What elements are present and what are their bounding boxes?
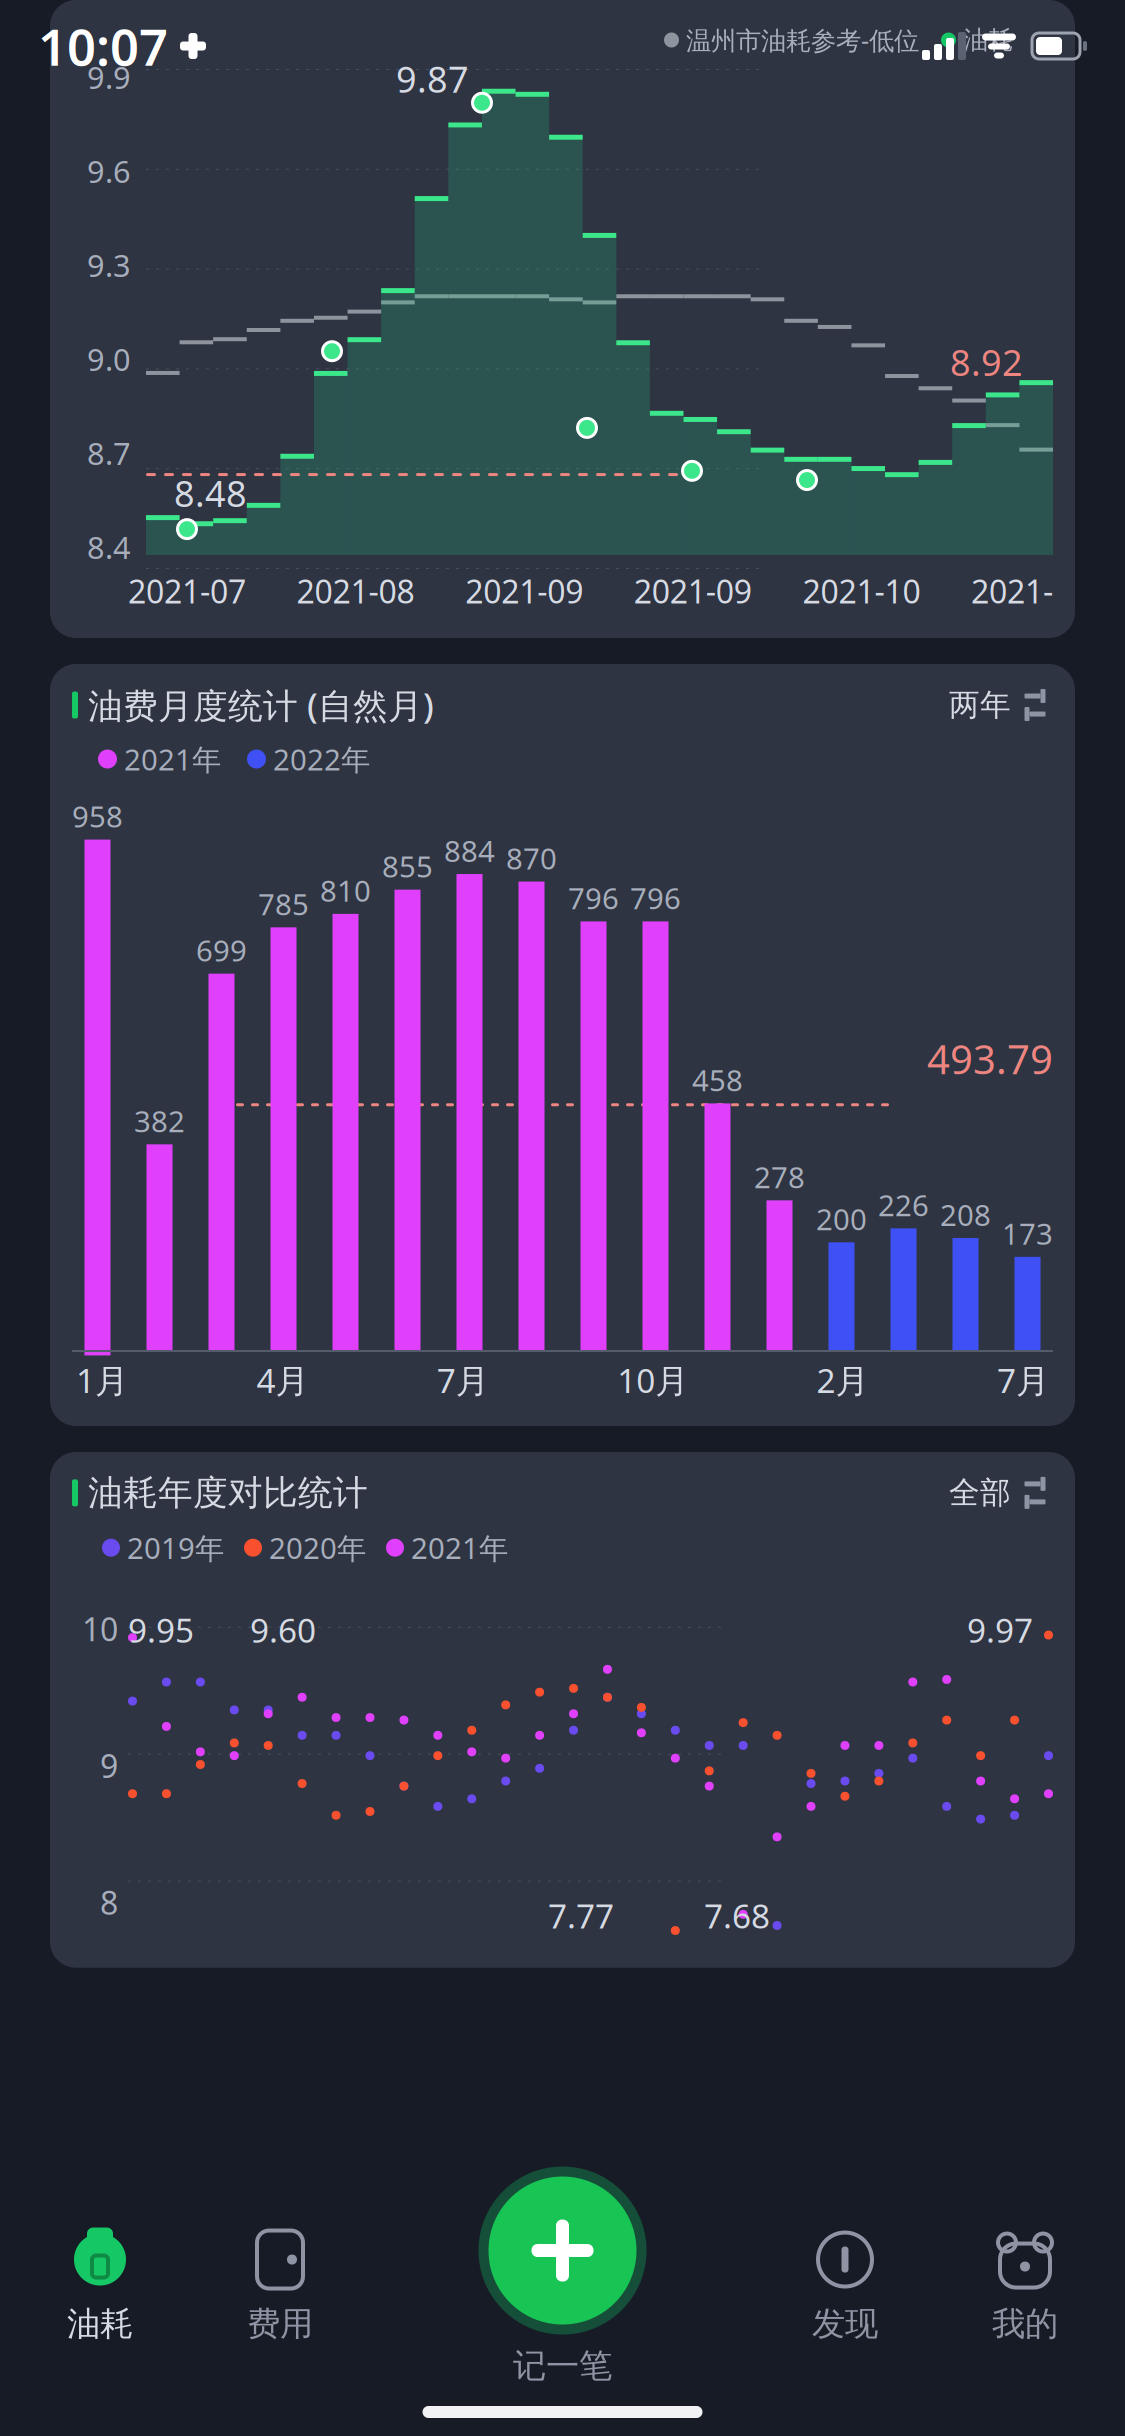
staticText: 2021-10 xyxy=(802,570,920,612)
staticText: 费用 xyxy=(247,2303,313,2344)
staticText: 796 xyxy=(568,878,619,917)
staticText: 7月 xyxy=(997,1358,1049,1402)
button[interactable]: 我的 xyxy=(935,2211,1115,2361)
staticText: 2021- xyxy=(971,570,1053,612)
staticText: 2022年 xyxy=(273,740,370,779)
staticText: 2021年 xyxy=(124,740,221,779)
staticText: 7.68 xyxy=(704,1893,770,1938)
staticText: 10月 xyxy=(617,1358,688,1402)
staticText: 796 xyxy=(630,878,681,917)
staticText: 278 xyxy=(754,1157,805,1196)
staticText: 2020年 xyxy=(269,1528,366,1567)
staticText: 2021-09 xyxy=(634,570,752,612)
staticText: 2021-08 xyxy=(297,570,415,612)
staticText: 油耗年度对比统计 xyxy=(88,1472,368,1514)
staticText: 226 xyxy=(878,1185,929,1224)
staticText: 208 xyxy=(940,1195,991,1234)
staticText: 9.87 xyxy=(396,55,469,103)
staticText: 10 xyxy=(82,1608,118,1650)
staticText: 油费月度统计 (自然月) xyxy=(88,682,434,728)
staticText: 870 xyxy=(506,839,557,878)
staticText: 9.0 xyxy=(87,339,131,379)
staticText: 9.60 xyxy=(250,1608,316,1652)
staticText: 2019年 xyxy=(127,1528,224,1567)
button[interactable]: 记一笔 xyxy=(513,2345,612,2386)
staticText: 9.95 xyxy=(128,1608,194,1652)
staticText: 油耗 xyxy=(963,24,1013,55)
staticText: 油耗 xyxy=(67,2303,133,2344)
staticText: 382 xyxy=(134,1101,185,1140)
staticText: 8 xyxy=(100,1881,118,1924)
staticText: 173 xyxy=(1002,1214,1053,1253)
staticText: 958 xyxy=(72,797,123,836)
staticText: 2月 xyxy=(817,1358,869,1402)
staticText: 8.92 xyxy=(950,338,1023,386)
staticText: 4月 xyxy=(256,1358,308,1402)
staticText: 两年 xyxy=(949,686,1011,724)
button[interactable]: 费用 xyxy=(190,2211,370,2361)
staticText: 9.3 xyxy=(87,245,131,285)
staticText: 2021-09 xyxy=(465,570,583,612)
button[interactable]: Add record xyxy=(477,2165,647,2335)
staticText: 699 xyxy=(196,931,247,970)
staticText: 458 xyxy=(692,1060,743,1099)
button[interactable]: 全部 xyxy=(945,1470,1053,1516)
button[interactable]: 两年 xyxy=(945,682,1053,728)
staticText: 温州市油耗参考-低位 xyxy=(686,23,919,57)
staticText: 2021年 xyxy=(411,1528,508,1567)
staticText: 493.79 xyxy=(927,1032,1053,1085)
staticText: 7月 xyxy=(437,1358,489,1402)
staticText: 884 xyxy=(444,831,495,870)
staticText: 9 xyxy=(100,1744,118,1787)
staticText: 2021-07 xyxy=(128,570,246,612)
staticText: 8.48 xyxy=(174,469,247,517)
staticText: 9.6 xyxy=(87,151,131,191)
staticText: 记一笔 xyxy=(513,2345,612,2386)
button[interactable]: 油耗 xyxy=(10,2211,190,2361)
staticText: 200 xyxy=(816,1199,867,1238)
staticText: 8.4 xyxy=(87,527,131,567)
staticText: 全部 xyxy=(949,1474,1011,1512)
staticText: 855 xyxy=(382,847,433,886)
staticText: 我的 xyxy=(992,2303,1058,2344)
staticText: 10:07 xyxy=(38,12,168,80)
staticText: 9.97 xyxy=(967,1608,1033,1652)
staticText: 810 xyxy=(320,871,371,910)
staticText: 8.7 xyxy=(87,433,131,473)
staticText: 7.77 xyxy=(548,1893,614,1938)
staticText: 发现 xyxy=(812,2303,878,2344)
staticText: 9.9 xyxy=(87,57,131,97)
staticText: 1月 xyxy=(76,1358,128,1402)
staticText: 785 xyxy=(258,884,309,923)
button[interactable]: 发现 xyxy=(755,2211,935,2361)
